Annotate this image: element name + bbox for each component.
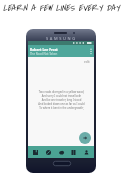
button[interactable]: Favourites <box>43 146 54 158</box>
button[interactable]: Library <box>30 146 41 158</box>
staticText: Two roads diverged in a yellow wood, And… <box>38 90 85 110</box>
staticText: Robert Lee Frost <box>30 47 58 52</box>
button[interactable]: Profile <box>81 146 92 158</box>
button[interactable]: More options <box>90 48 92 54</box>
staticText: SAMSUNG <box>46 36 77 40</box>
button[interactable]: Home <box>53 161 71 166</box>
staticText: LEARN A FEW LINES EVERY DAY <box>3 2 120 15</box>
button[interactable]: Cloud <box>56 146 67 158</box>
staticText: The Road Not Taken <box>30 52 58 56</box>
button[interactable]: edit <box>84 60 90 64</box>
button[interactable]: Books <box>68 146 79 158</box>
button[interactable]: Next poem <box>79 132 91 144</box>
